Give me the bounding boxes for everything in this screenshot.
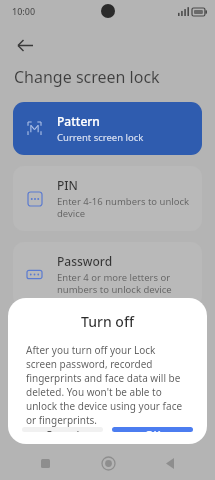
button[interactable]: OK xyxy=(112,427,193,432)
button[interactable]: Back xyxy=(8,28,42,62)
button[interactable]: Make pattern visible xyxy=(0,323,215,357)
button[interactable]: Home xyxy=(91,446,125,480)
button[interactable]: Cancel xyxy=(22,427,103,432)
staticText: 10:00 xyxy=(12,5,36,17)
staticText: After you turn off your Lock screen pass… xyxy=(26,343,189,427)
button[interactable]: Recents xyxy=(28,446,62,480)
staticText: Make pattern visible xyxy=(16,332,131,348)
staticText: OK xyxy=(145,427,161,432)
button[interactable]: PIN xyxy=(13,166,202,231)
staticText: PIN xyxy=(57,177,78,193)
staticText: Current screen lock xyxy=(57,131,144,144)
staticText: Turn off xyxy=(8,312,207,331)
staticText: Password xyxy=(57,253,113,269)
staticText: Enter 4-16 numbers to unlock device xyxy=(57,195,190,220)
staticText: Enter 4 or more letters or numbers to un… xyxy=(57,271,190,296)
button[interactable]: Pattern xyxy=(13,102,202,155)
staticText: Pattern xyxy=(57,113,100,129)
staticText: Change screen lock xyxy=(14,66,160,88)
button[interactable]: Back xyxy=(153,446,187,480)
button[interactable]: Password xyxy=(13,242,202,307)
staticText: Cancel xyxy=(45,427,80,432)
